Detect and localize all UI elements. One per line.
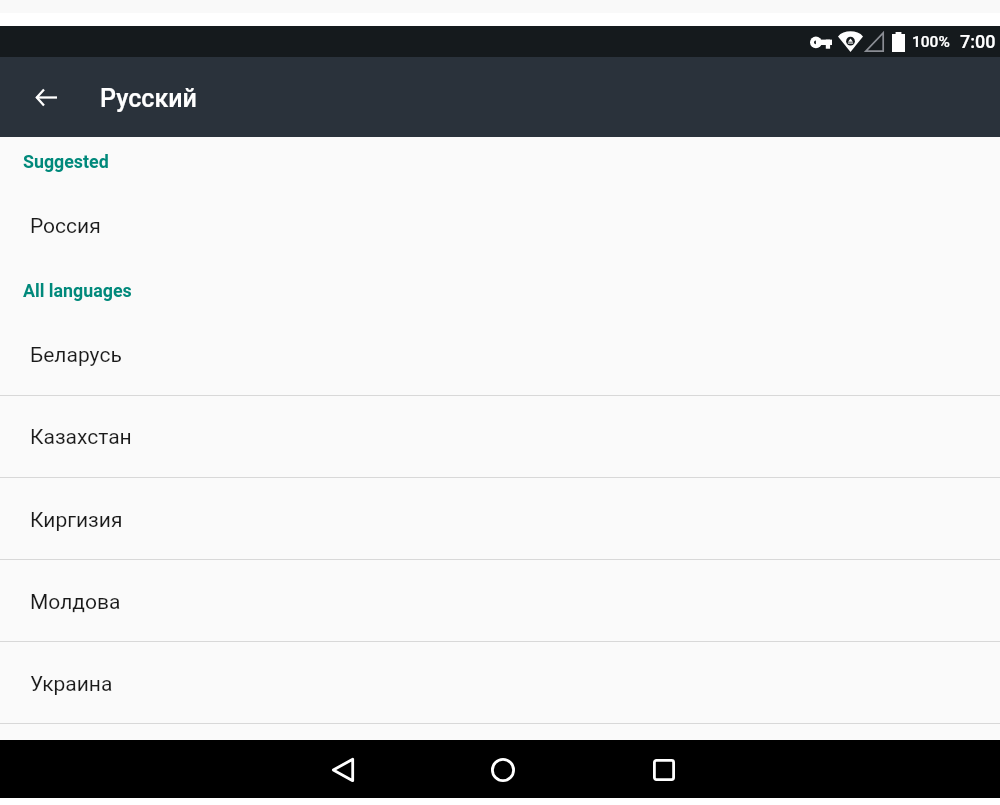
button[interactable]: Home [480,747,526,793]
button[interactable]: Recent apps [641,747,687,793]
button[interactable]: Suggested [0,144,1000,178]
staticText: 100% [912,33,950,51]
button[interactable]: Киргизия [0,480,1000,561]
button[interactable]: Navigate up [24,75,68,119]
button[interactable]: Украина [0,644,1000,725]
button[interactable]: Россия [0,198,1000,254]
button[interactable]: All languages [0,273,1000,307]
staticText: All languages [23,280,132,301]
staticText: Молдова [30,590,121,615]
staticText: Киргизия [30,508,123,533]
staticText: Русский [100,84,197,113]
staticText: Украина [30,672,113,697]
staticText: Россия [30,214,101,239]
button[interactable]: Казахстан [0,397,1000,478]
staticText: Казахстан [30,425,132,450]
staticText: 7:00 [960,31,996,52]
staticText: Suggested [23,151,109,172]
button[interactable]: Back [320,747,366,793]
button[interactable]: Молдова [0,562,1000,643]
button[interactable]: Беларусь [0,321,1000,389]
staticText: Беларусь [30,343,122,368]
